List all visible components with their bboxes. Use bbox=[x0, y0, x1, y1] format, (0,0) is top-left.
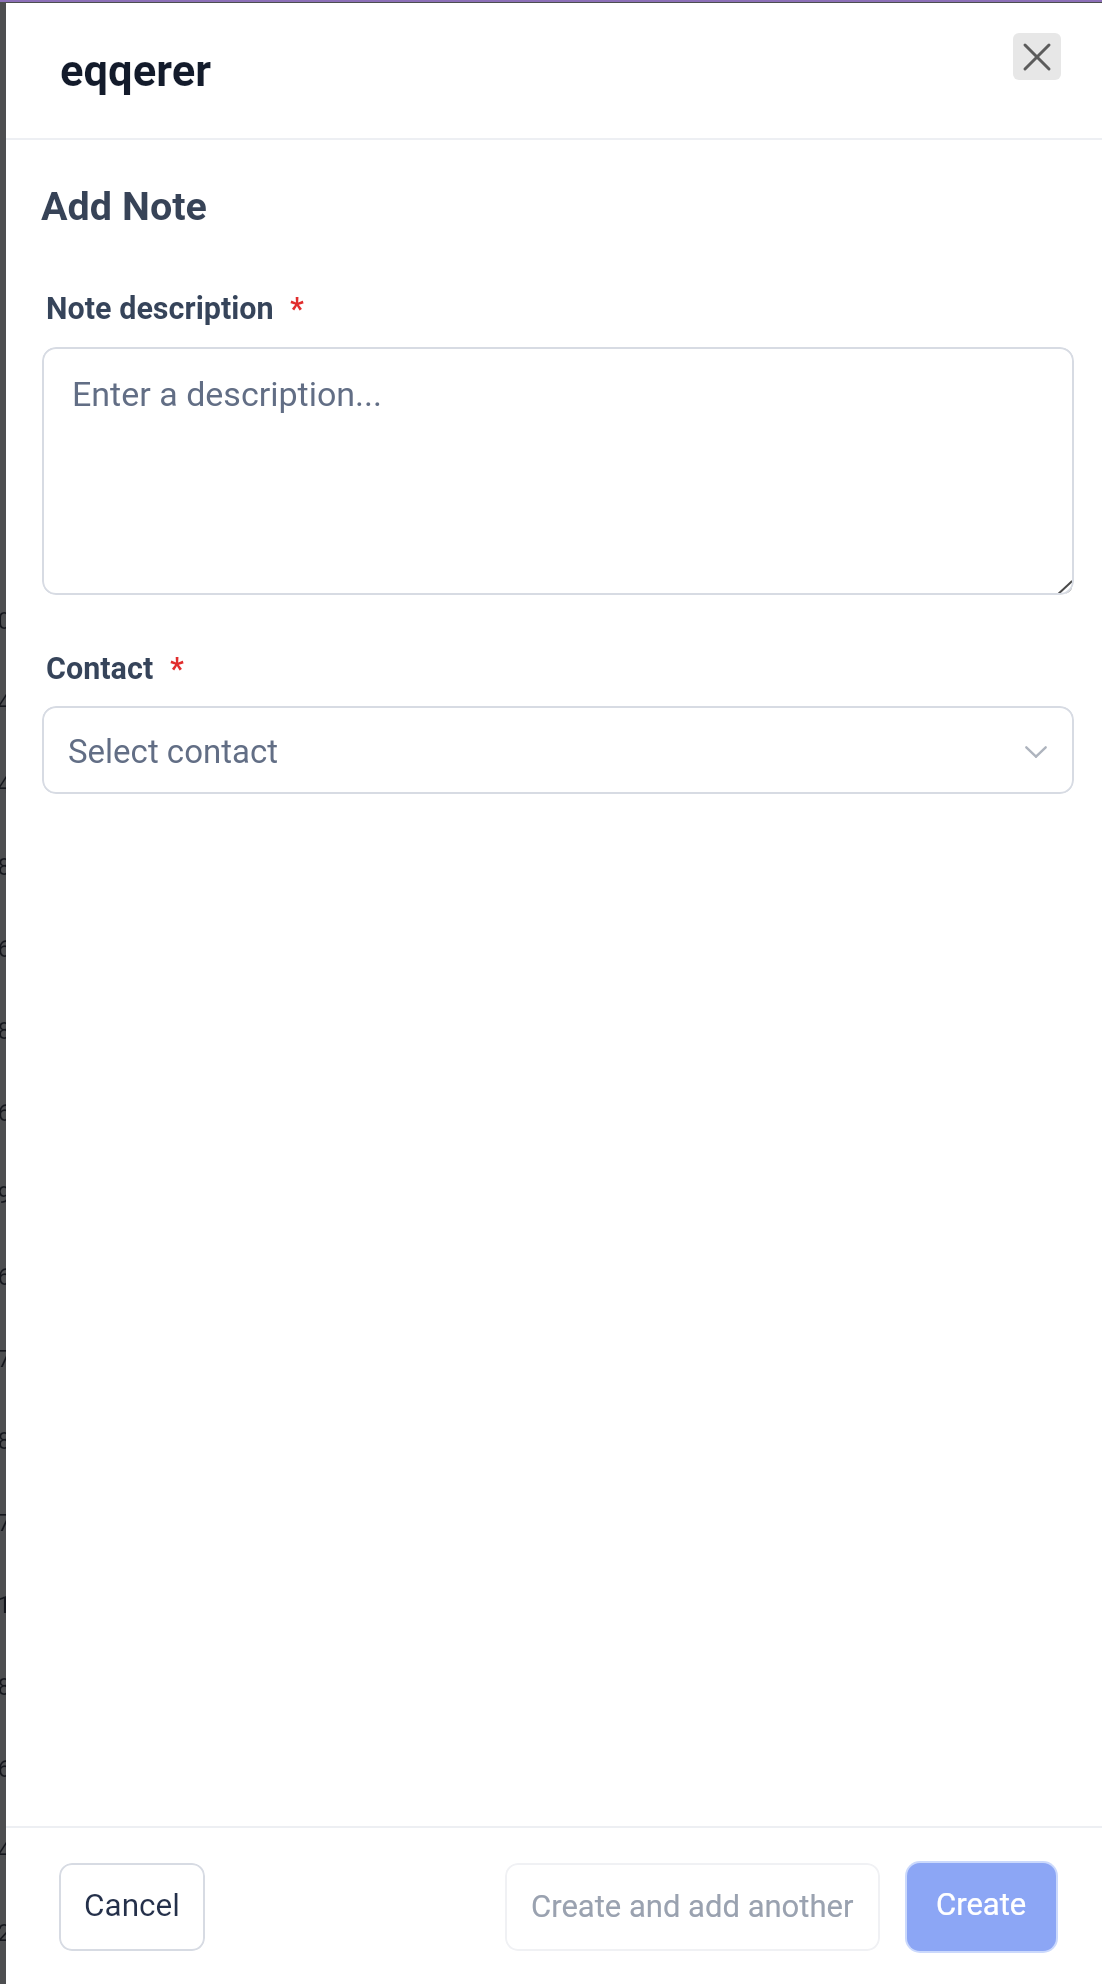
button[interactable]: Cancel bbox=[59, 1863, 205, 1951]
staticText: eqqerer bbox=[60, 46, 212, 97]
button[interactable]: Select contact bbox=[42, 706, 1074, 794]
button[interactable]: Enter a description... bbox=[42, 347, 1074, 595]
staticText: 74 bbox=[0, 771, 11, 799]
button[interactable]: Create and add another bbox=[505, 1863, 880, 1951]
staticText: 76 bbox=[0, 935, 11, 963]
other: Resize bbox=[1057, 579, 1073, 595]
staticText: 71 bbox=[0, 1591, 11, 1619]
staticText: Enter a description... bbox=[72, 374, 383, 414]
staticText: Add Note bbox=[41, 183, 207, 229]
staticText: Create bbox=[936, 1886, 1027, 1922]
staticText: Contact bbox=[46, 651, 154, 687]
staticText: * bbox=[170, 651, 184, 687]
button[interactable]: Close bbox=[1013, 33, 1061, 80]
staticText: 76 bbox=[0, 1099, 11, 1127]
staticText: 77 bbox=[0, 1345, 11, 1373]
staticText: 76 bbox=[0, 1755, 11, 1783]
staticText: 77 bbox=[0, 1509, 11, 1537]
button[interactable]: Create bbox=[905, 1861, 1058, 1953]
staticText: Select contact bbox=[68, 732, 279, 771]
staticText: 78 bbox=[0, 853, 11, 881]
staticText: Cancel bbox=[84, 1887, 180, 1924]
staticText: 74 bbox=[0, 689, 11, 717]
staticText: 70 bbox=[0, 607, 11, 635]
staticText: 79 bbox=[0, 1181, 11, 1209]
staticText: 72 bbox=[0, 1919, 11, 1947]
staticText: * bbox=[290, 291, 304, 327]
staticText: 76 bbox=[0, 1263, 11, 1291]
other: Expand contact list bbox=[1025, 746, 1047, 758]
staticText: 78 bbox=[0, 1427, 11, 1455]
staticText: Note description bbox=[46, 291, 274, 327]
staticText: 78 bbox=[0, 1017, 11, 1045]
staticText: 74 bbox=[0, 1837, 11, 1865]
staticText: Create and add another bbox=[531, 1888, 854, 1924]
staticText: 78 bbox=[0, 1673, 11, 1701]
